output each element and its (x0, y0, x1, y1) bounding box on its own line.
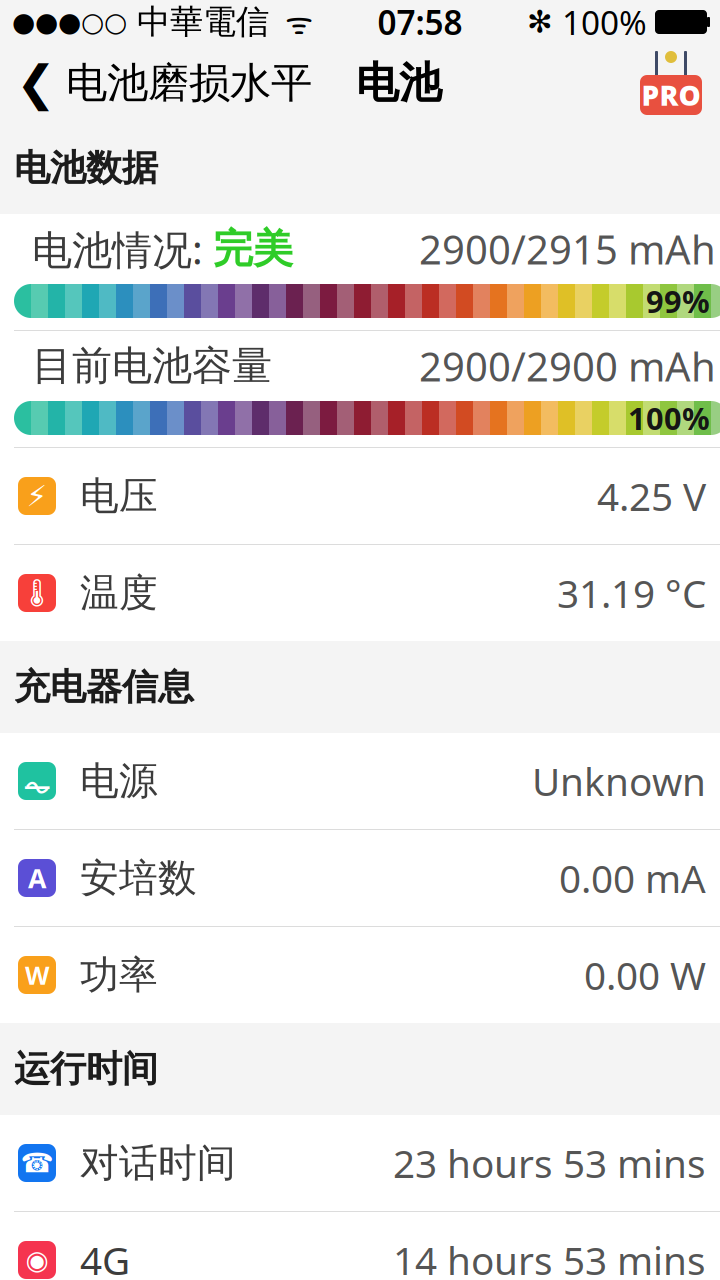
staticText: ✻ (527, 5, 553, 39)
button[interactable]: Upgrade to PRO (636, 51, 706, 115)
button[interactable]: ⏦ (0, 733, 720, 829)
button[interactable]: ◉ (0, 1212, 720, 1280)
staticText: ⚡︎ (26, 479, 47, 513)
button[interactable]: ☎ (0, 1115, 720, 1211)
staticText: 电压 (80, 472, 158, 520)
staticText: 2900/2900 mAh (419, 339, 716, 392)
staticText: ❮ (16, 56, 56, 110)
staticText: 功率 (80, 951, 158, 999)
staticText: 温度 (80, 569, 158, 617)
staticText: 对话时间 (80, 1139, 236, 1187)
staticText: Unknown (532, 755, 706, 807)
staticText: 电源 (80, 757, 158, 805)
staticText: ●●●○○ (12, 7, 127, 37)
staticText: 14 hours 53 mins (393, 1234, 706, 1280)
button[interactable]: W (0, 927, 720, 1023)
staticText: PRO (641, 76, 700, 114)
button[interactable]: 🌡 (0, 545, 720, 641)
staticText: 中華電信 (127, 1, 269, 42)
staticText: 07:58 (377, 0, 462, 44)
staticText: 运行时间 (14, 1047, 158, 1091)
staticText: 100% (553, 0, 647, 44)
staticText: 电池数据 (14, 146, 158, 190)
staticText: 99% (646, 281, 710, 321)
staticText: 4.25 V (597, 470, 706, 522)
staticText: 电池磨损水平 (66, 58, 312, 108)
staticText: 23 hours 53 mins (393, 1137, 706, 1189)
staticText: 电池情况: (32, 222, 213, 275)
staticText: ☎ (20, 1148, 53, 1178)
staticText: 充电器信息 (14, 665, 194, 709)
staticText: A (28, 860, 46, 896)
staticText: ᯤ (269, 2, 313, 42)
staticText: 目前电池容量 (32, 341, 272, 390)
staticText: 31.19 °C (557, 567, 706, 619)
staticText: 2900/2915 mAh (419, 222, 716, 275)
staticText: 完美 (213, 224, 293, 273)
staticText: 0.00 mA (559, 852, 706, 904)
staticText: ⏦ (23, 754, 50, 808)
staticText: W (25, 958, 49, 992)
staticText: ◉ (25, 1245, 48, 1275)
staticText: 安培数 (80, 854, 197, 902)
staticText: 4G (80, 1234, 130, 1280)
staticText: 0.00 W (584, 949, 706, 1001)
staticText: 🌡 (20, 578, 54, 608)
staticText: 电池 (356, 57, 442, 109)
button[interactable]: A (0, 830, 720, 926)
button[interactable]: ❮ (0, 56, 312, 110)
staticText: 100% (628, 398, 710, 438)
button[interactable]: ⚡︎ (0, 448, 720, 544)
